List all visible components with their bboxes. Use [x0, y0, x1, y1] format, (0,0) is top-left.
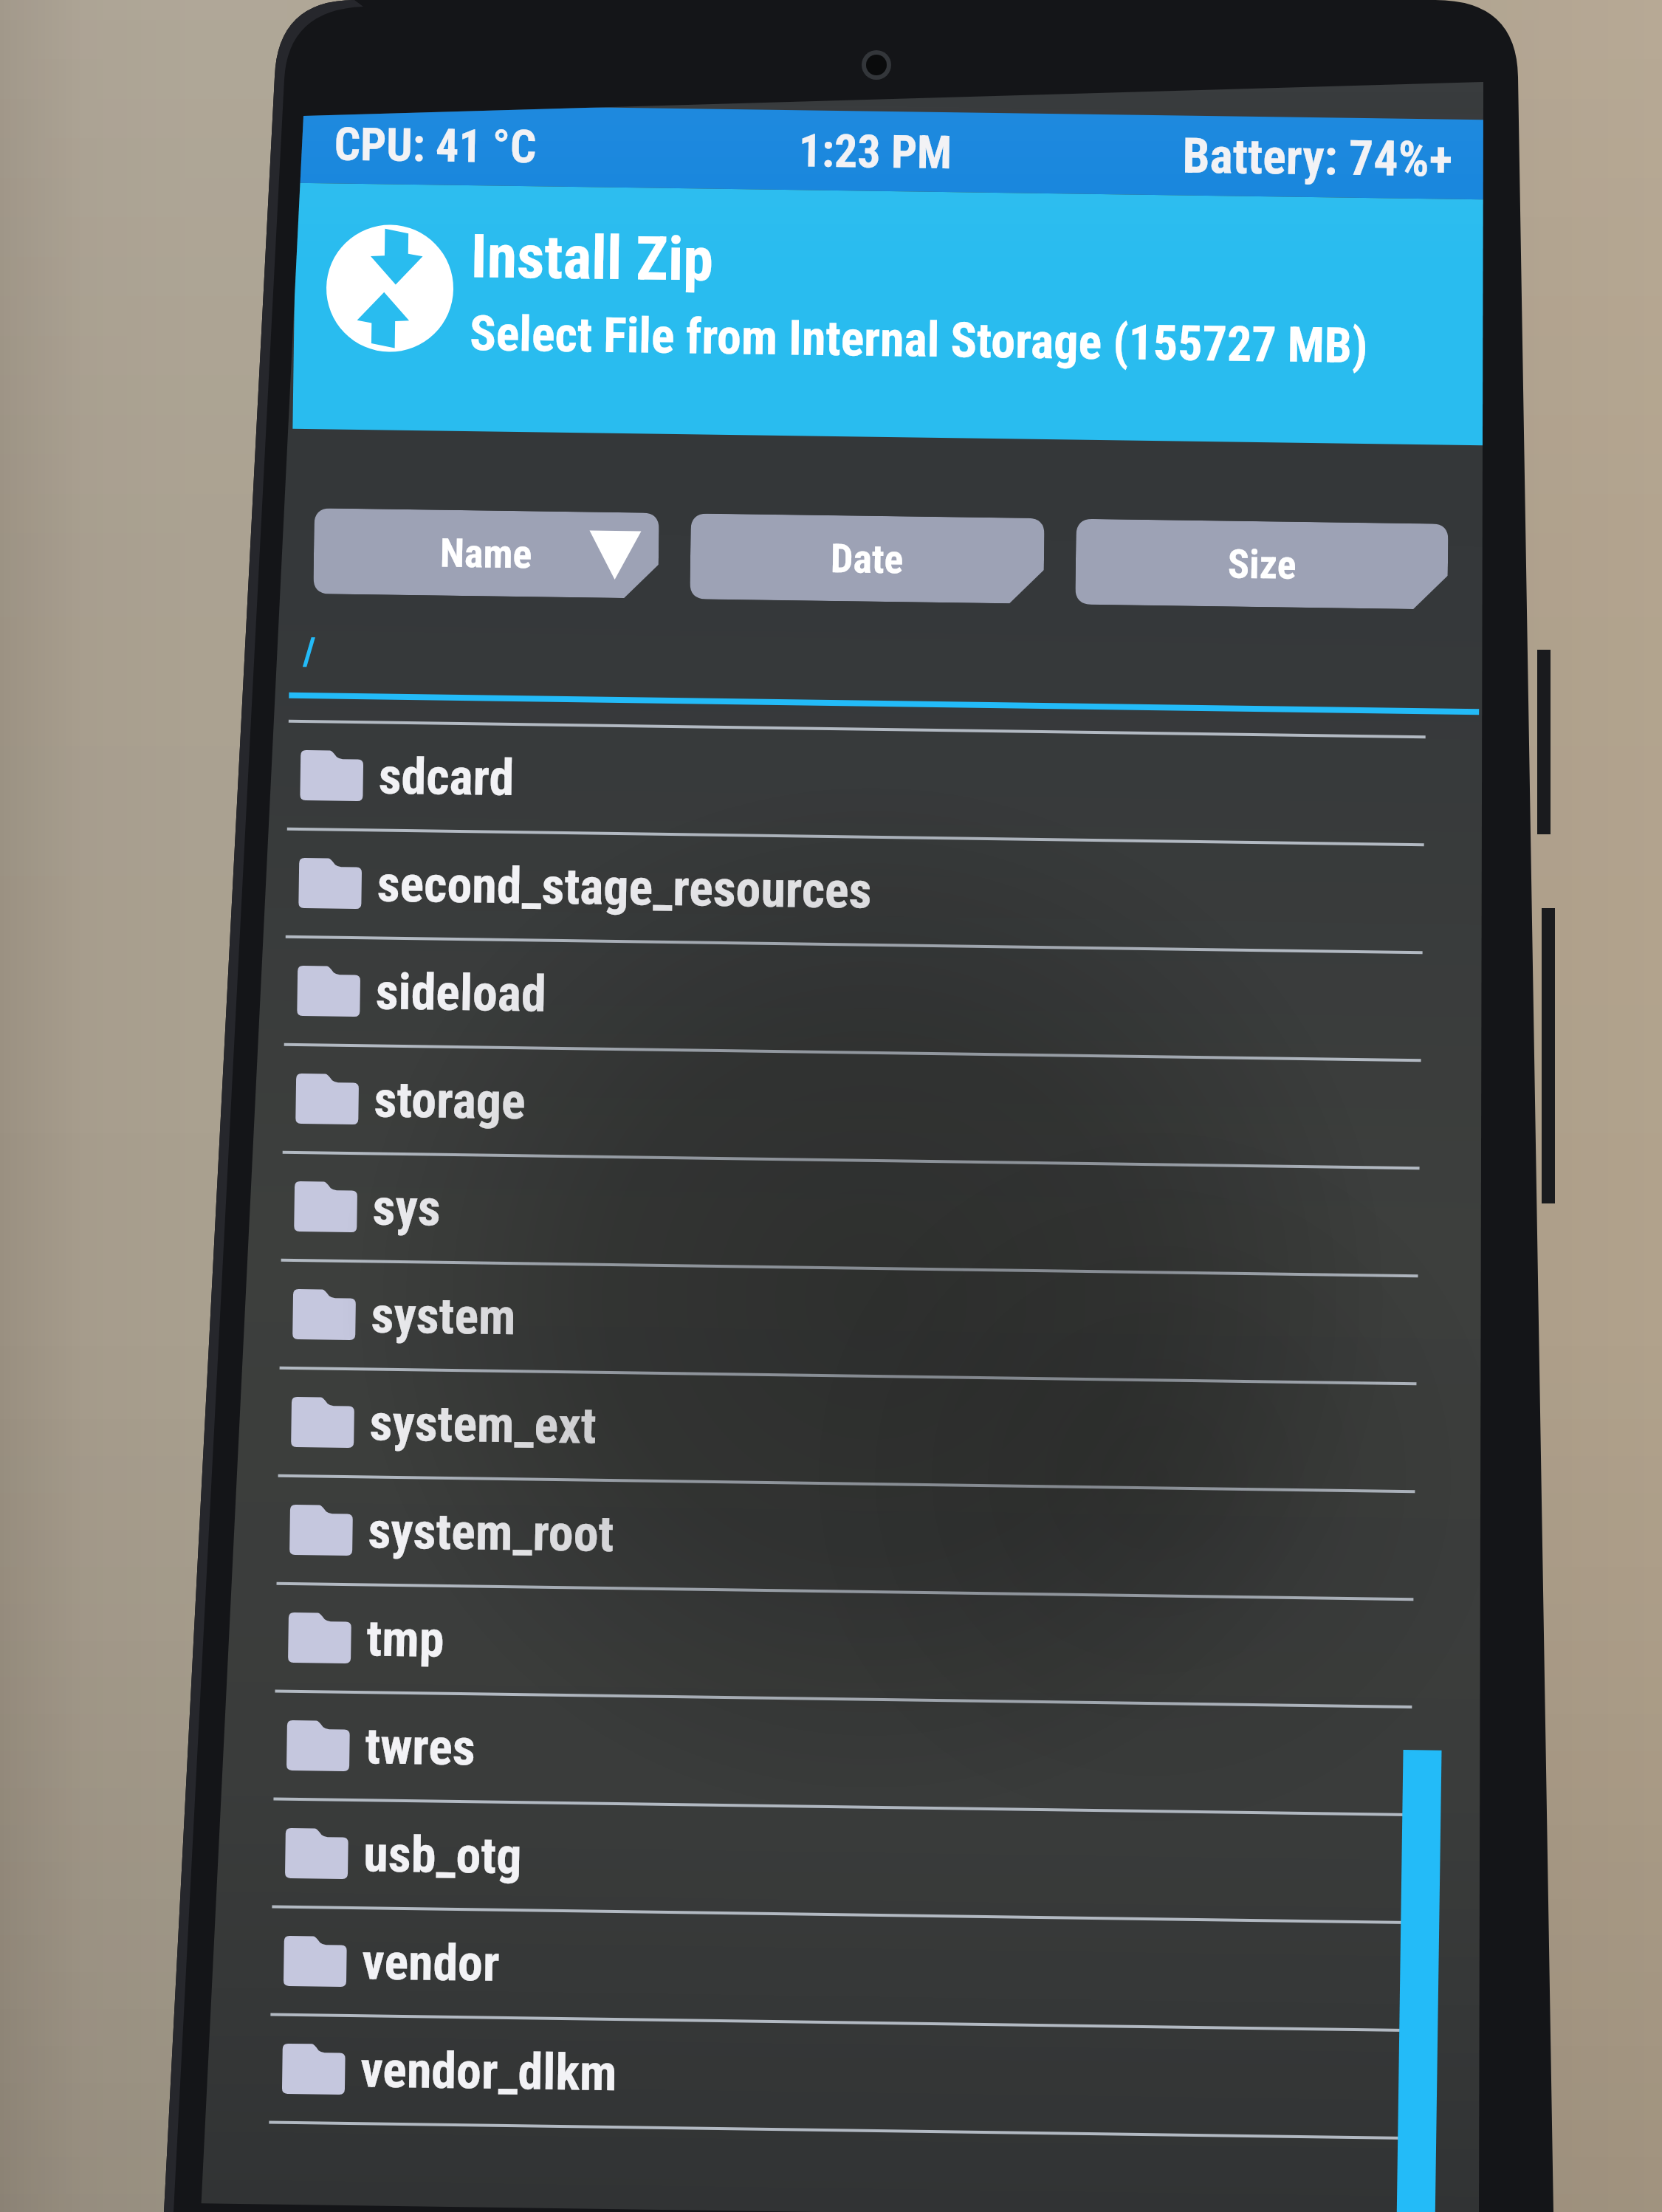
- staticText: 1:23 PM: [798, 124, 953, 180]
- button[interactable]: vendor_dlkm: [269, 2016, 1407, 2137]
- other: Sort descending: [589, 530, 641, 580]
- staticText: sideload: [375, 962, 547, 1024]
- staticText: tmp: [366, 1609, 444, 1669]
- staticText: sys: [372, 1178, 442, 1238]
- staticText: twres: [365, 1717, 476, 1777]
- staticText: sdcard: [378, 747, 515, 808]
- button[interactable]: sdcard: [287, 723, 1425, 843]
- staticText: system_root: [368, 1501, 614, 1564]
- button[interactable]: Size: [1075, 519, 1448, 610]
- other: TWRP: [325, 224, 454, 353]
- staticText: /: [302, 629, 316, 674]
- button[interactable]: sys: [281, 1154, 1419, 1274]
- button[interactable]: storage: [283, 1046, 1421, 1167]
- button[interactable]: vendor: [271, 1908, 1409, 2029]
- button[interactable]: sideload: [284, 938, 1422, 1059]
- button[interactable]: system_root: [277, 1477, 1415, 1598]
- other: Scroll position: [1397, 1750, 1442, 2212]
- staticText: storage: [374, 1070, 526, 1131]
- button[interactable]: system: [280, 1262, 1418, 1382]
- button[interactable]: usb_otg: [272, 1800, 1410, 1921]
- button[interactable]: Date: [690, 513, 1045, 604]
- staticText: second_stage_resources: [377, 855, 872, 921]
- button[interactable]: tmp: [275, 1585, 1413, 1706]
- staticText: Name: [440, 530, 533, 578]
- button[interactable]: second_stage_resources: [286, 830, 1424, 951]
- staticText: Date: [830, 535, 904, 583]
- staticText: Battery: 74%+: [1182, 127, 1453, 188]
- button[interactable]: system_ext: [278, 1369, 1416, 1490]
- staticText: CPU: 41 °C: [334, 117, 537, 174]
- staticText: system_ext: [369, 1394, 597, 1456]
- staticText: vendor: [362, 1932, 501, 1993]
- staticText: Size: [1227, 541, 1297, 588]
- staticText: Install Zip: [470, 221, 714, 295]
- button[interactable]: /: [289, 610, 1480, 709]
- staticText: Select File from Internal Storage (15572…: [469, 305, 1369, 374]
- button[interactable]: TWRP: [293, 183, 1486, 445]
- button[interactable]: twres: [274, 1693, 1412, 1813]
- button[interactable]: Name: [313, 508, 659, 599]
- staticText: usb_otg: [363, 1825, 523, 1886]
- staticText: vendor_dlkm: [360, 2040, 618, 2103]
- staticText: system: [371, 1286, 516, 1347]
